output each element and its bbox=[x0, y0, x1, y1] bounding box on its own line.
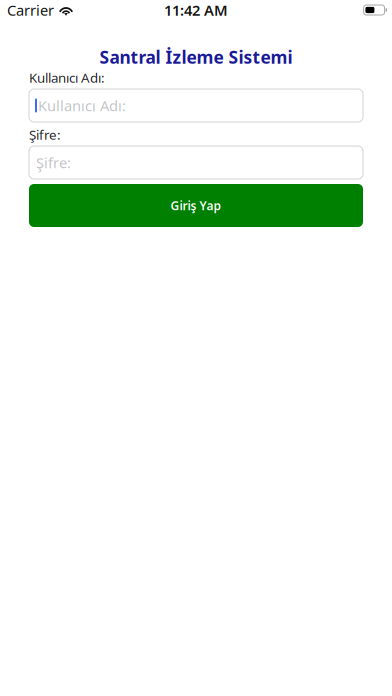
button[interactable]: Şifre: bbox=[29, 146, 363, 179]
button[interactable]: Kullanıcı Adı: bbox=[29, 89, 363, 122]
staticText: 11:42 AM bbox=[164, 0, 228, 20]
staticText: Kullanıcı Adı: bbox=[38, 96, 126, 115]
staticText: Santral İzleme Sistemi bbox=[99, 45, 292, 68]
staticText: Kullanıcı Adı: bbox=[29, 69, 105, 86]
staticText: Şifre: bbox=[29, 126, 61, 143]
staticText: Carrier bbox=[7, 0, 54, 20]
button[interactable]: Giriş Yap bbox=[29, 184, 363, 227]
staticText: Şifre: bbox=[36, 153, 71, 172]
staticText: Giriş Yap bbox=[170, 197, 221, 213]
